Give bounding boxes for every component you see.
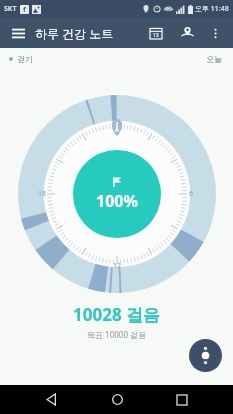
staticText: 목표 10000 걸음 bbox=[87, 329, 147, 340]
button[interactable]: Location bbox=[176, 22, 198, 44]
button[interactable]: Home bbox=[102, 385, 132, 414]
button[interactable]: Back bbox=[36, 385, 66, 414]
staticText: 하루 건강 노트 bbox=[35, 25, 114, 41]
button[interactable]: Calendar bbox=[145, 22, 167, 44]
staticText: 10028 걸음 bbox=[73, 303, 161, 326]
button[interactable]: Menu bbox=[8, 23, 28, 43]
staticText: 오늘 bbox=[206, 54, 222, 64]
staticText: 6 bbox=[189, 189, 194, 199]
staticText: 12 bbox=[113, 261, 122, 271]
staticText: 오후 11:48 bbox=[195, 4, 229, 14]
staticText: f bbox=[23, 5, 26, 14]
staticText: 100% bbox=[96, 190, 138, 212]
staticText: 13 bbox=[153, 32, 159, 39]
button[interactable]: 오늘 bbox=[204, 52, 224, 66]
button[interactable]: More options bbox=[189, 339, 222, 372]
staticText: SKT bbox=[4, 4, 17, 14]
staticText: 걷기 bbox=[17, 54, 33, 64]
staticText: 18 bbox=[38, 189, 47, 199]
button[interactable]: More bbox=[205, 23, 225, 43]
button[interactable]: Recents bbox=[167, 385, 197, 414]
